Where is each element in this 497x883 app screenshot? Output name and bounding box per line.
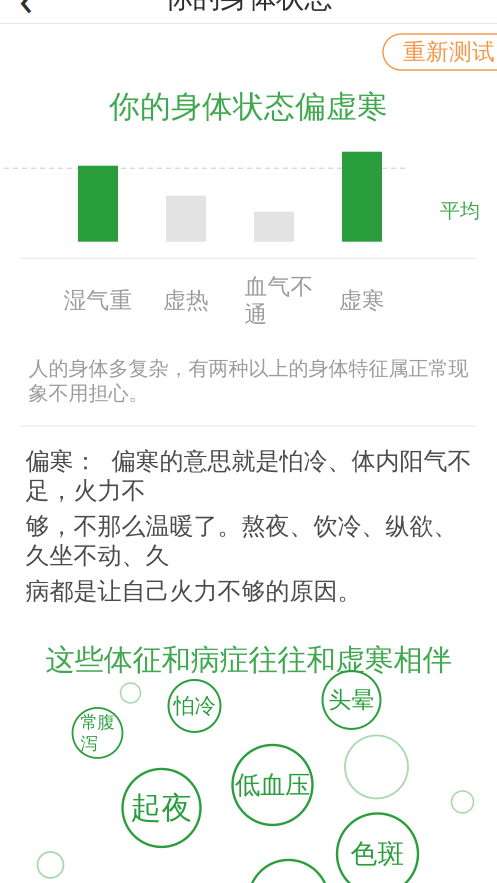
staticText: 虚寒 bbox=[339, 287, 385, 314]
staticText: 怕冷 bbox=[173, 693, 215, 719]
staticText: 湿气重 bbox=[63, 287, 132, 314]
staticText: ‹ bbox=[19, 0, 33, 28]
staticText: 你的身体状态偏虚寒 bbox=[109, 88, 388, 126]
staticText: 病都是让自己火力不够的原因。 bbox=[25, 576, 361, 606]
staticText: 起夜 bbox=[130, 789, 192, 827]
button[interactable]: Back bbox=[0, 0, 52, 21]
staticText: 人的身体多复杂，有两种以上的身体特征属正常现象不用担心。 bbox=[28, 356, 468, 405]
staticText: 偏寒： 偏寒的意思就是怕冷、体内阳气不足，火力不 bbox=[25, 446, 471, 505]
staticText: 你的身体状态 bbox=[164, 0, 332, 15]
staticText: 平均 bbox=[440, 198, 480, 223]
staticText: 够，不那么温暖了。熬夜、饮冷、纵欲、久坐不动、久 bbox=[25, 511, 457, 570]
staticText: 这些体征和病症往往和虚寒相伴 bbox=[45, 642, 451, 678]
staticText: 血气不通 bbox=[244, 273, 313, 328]
staticText: 虚热 bbox=[163, 287, 209, 314]
staticText: 重新测试 bbox=[403, 38, 495, 66]
staticText: 常腹泻 bbox=[80, 712, 114, 754]
staticText: 色斑 bbox=[350, 838, 404, 870]
staticText: 低血压 bbox=[235, 769, 310, 800]
staticText: 头晕 bbox=[328, 686, 374, 714]
button[interactable]: 重新测试 bbox=[383, 34, 497, 70]
